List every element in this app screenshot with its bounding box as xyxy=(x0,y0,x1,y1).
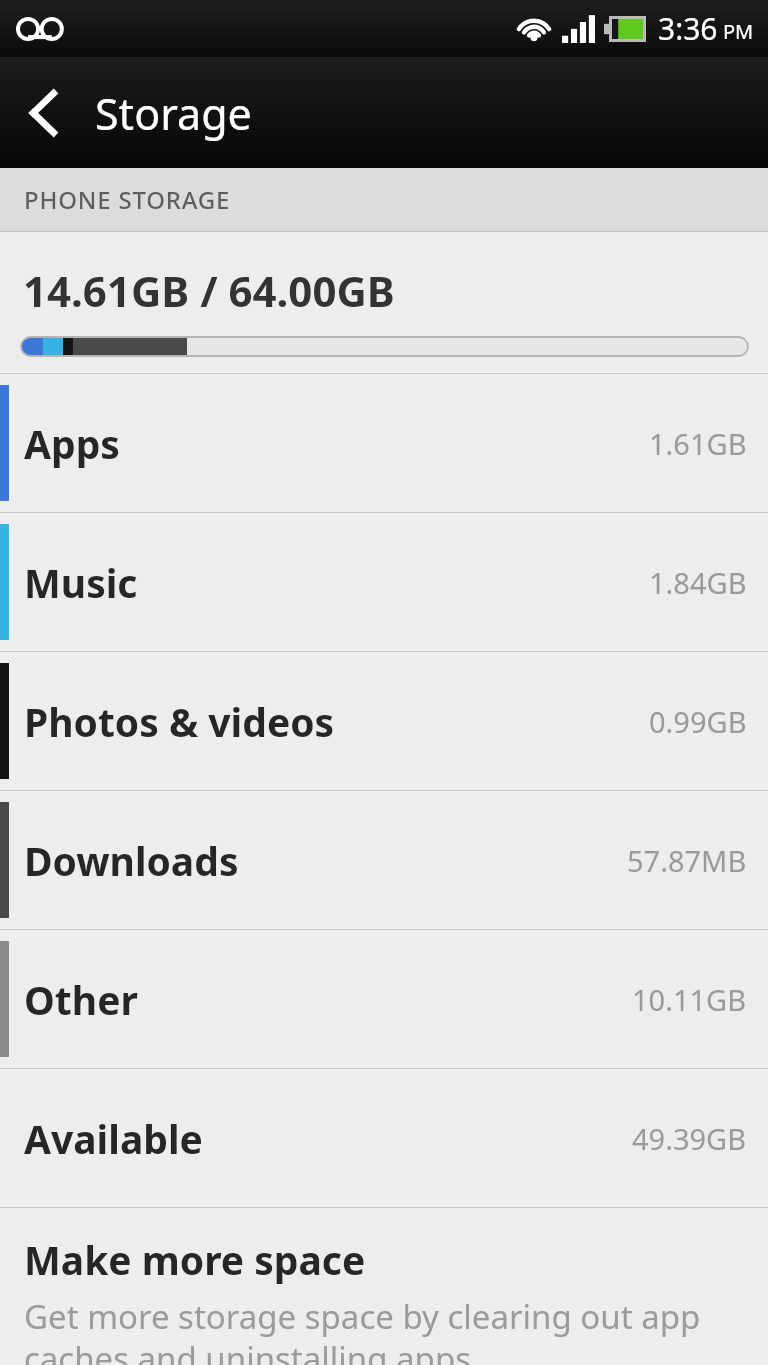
button[interactable]: Music xyxy=(0,513,768,651)
button[interactable]: Downloads xyxy=(0,791,768,929)
button[interactable]: 14.61GB / 64.00GB xyxy=(0,232,768,373)
staticText: 14.61GB / 64.00GB xyxy=(23,262,395,319)
staticText: PM xyxy=(723,18,754,45)
button[interactable]: Other xyxy=(0,930,768,1068)
staticText: 1.84GB xyxy=(649,563,747,602)
button[interactable]: Make more space xyxy=(0,1208,768,1365)
staticText: Available xyxy=(24,1112,203,1165)
staticText: 49.39GB xyxy=(632,1119,747,1158)
button[interactable]: Back xyxy=(0,69,88,157)
staticText: Get more storage space by clearing out a… xyxy=(24,1294,701,1365)
staticText: Photos & videos xyxy=(24,695,335,748)
button[interactable]: Apps xyxy=(0,374,768,512)
staticText: 10.11GB xyxy=(632,980,747,1019)
button[interactable]: Photos & videos xyxy=(0,652,768,790)
staticText: PHONE STORAGE xyxy=(24,183,231,216)
staticText: Downloads xyxy=(24,834,239,887)
staticText: Other xyxy=(24,973,138,1026)
staticText: Apps xyxy=(24,417,120,470)
staticText: 0.99GB xyxy=(649,702,747,741)
button[interactable]: Available xyxy=(0,1069,768,1207)
staticText: Storage xyxy=(95,84,252,143)
staticText: 57.87MB xyxy=(627,841,747,880)
staticText: 1.61GB xyxy=(649,424,747,463)
staticText: Music xyxy=(24,556,138,609)
staticText: Make more space xyxy=(24,1233,366,1286)
staticText: 3:36 xyxy=(658,8,718,49)
